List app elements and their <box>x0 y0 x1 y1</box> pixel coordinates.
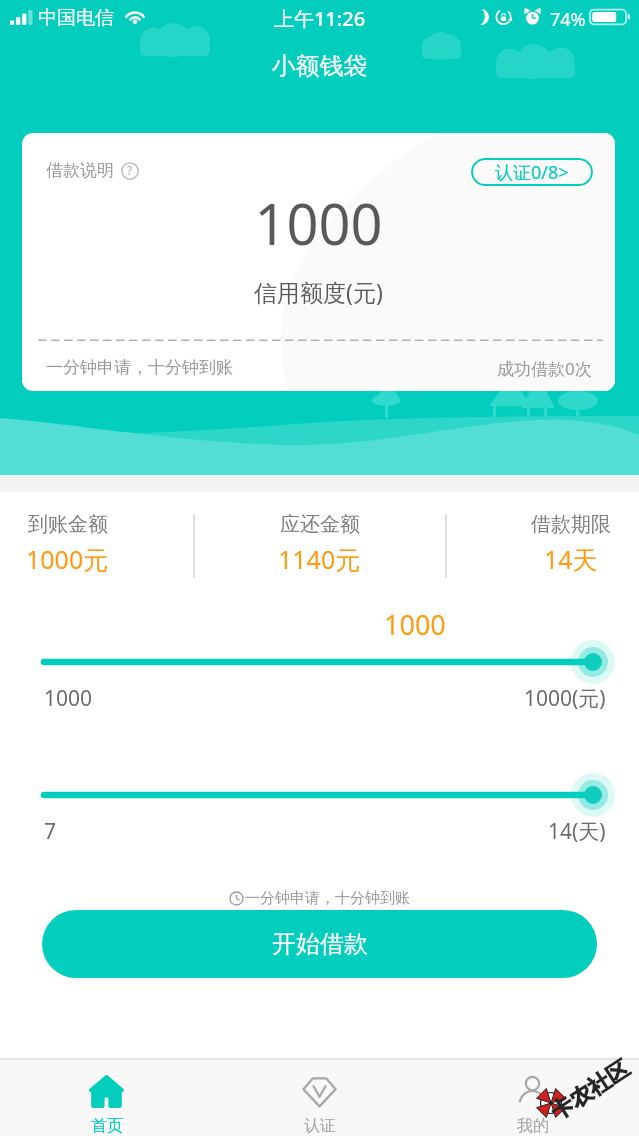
staticText: 14(天) <box>548 817 606 846</box>
staticText: 认证 <box>304 1116 336 1136</box>
staticText: 卡农社区 <box>546 1055 635 1126</box>
staticText: 74% <box>550 7 586 32</box>
staticText: 1000(元) <box>524 684 606 713</box>
staticText: 上午11:26 <box>0 5 639 32</box>
staticText: 一分钟申请，十分钟到账 <box>46 357 233 378</box>
button[interactable]: Amount slider <box>20 779 619 811</box>
staticText: 借款说明 <box>46 160 114 181</box>
button[interactable]: 认证0/8> <box>471 158 593 186</box>
button[interactable]: 开始借款 <box>42 910 597 978</box>
staticText: 1000元 <box>26 542 109 576</box>
staticText: ? <box>127 162 133 178</box>
staticText: 借款期限 <box>531 512 611 537</box>
staticText: 中国电信 <box>38 6 114 30</box>
staticText: 7 <box>44 817 57 846</box>
button[interactable]: 我的 <box>426 1060 639 1136</box>
staticText: 认证0/8> <box>495 160 569 185</box>
staticText: 1140元 <box>278 542 361 576</box>
staticText: 我的 <box>517 1116 549 1136</box>
staticText: 成功借款0次 <box>497 357 592 380</box>
staticText: 一分钟申请，十分钟到账 <box>245 889 410 908</box>
staticText: 应还金额 <box>280 512 360 537</box>
staticText: 14天 <box>544 542 598 576</box>
staticText: 到账金额 <box>28 512 108 537</box>
staticText: 1000 <box>44 684 93 713</box>
staticText: 1000 <box>22 185 615 261</box>
staticText: 开始借款 <box>272 929 368 959</box>
staticText: 1000 <box>384 606 446 643</box>
button[interactable]: 首页 <box>0 1060 213 1136</box>
staticText: 小额钱袋 <box>0 51 639 81</box>
button[interactable]: 认证 <box>213 1060 426 1136</box>
staticText: 首页 <box>91 1116 123 1136</box>
button[interactable]: Amount slider <box>20 646 619 678</box>
staticText: 信用额度(元) <box>22 276 615 307</box>
button[interactable]: 借款说明 <box>46 160 139 181</box>
